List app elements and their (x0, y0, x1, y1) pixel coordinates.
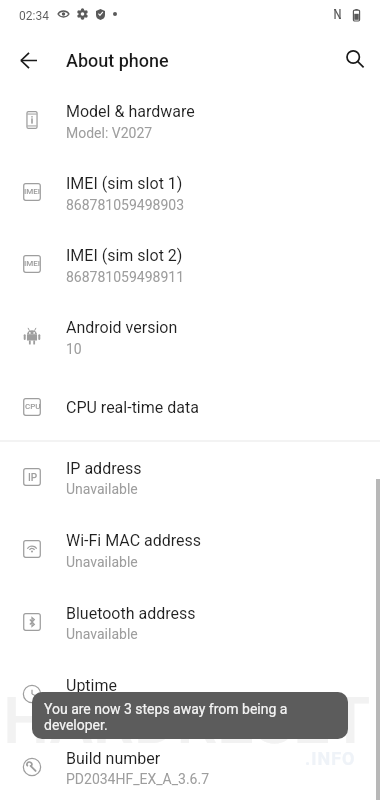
staticText: 868781059498903 (66, 197, 185, 213)
staticText: Model: V2027 (66, 125, 153, 141)
staticText: CPU real-time data (66, 398, 199, 417)
button[interactable] (0, 663, 380, 727)
button[interactable]: Search (333, 40, 373, 80)
button[interactable] (0, 591, 380, 655)
staticText: 868781059498911 (66, 269, 185, 285)
staticText: You are now 3 steps away from being a de… (44, 701, 334, 733)
staticText: IMEI (sim slot 2) (66, 246, 183, 265)
staticText: Bluetooth address (66, 604, 196, 623)
button[interactable] (0, 385, 380, 435)
staticText: Wi-Fi MAC address (66, 531, 202, 550)
staticText: IMEI (24, 259, 41, 268)
staticText: Unavailable (66, 481, 138, 497)
staticText: IMEI (24, 187, 41, 196)
staticText: IP address (66, 459, 142, 478)
staticText: About phone (66, 50, 169, 71)
button[interactable] (0, 161, 380, 225)
staticText: Unavailable (66, 554, 138, 570)
staticText: 10 (66, 341, 82, 357)
staticText: Android version (66, 318, 178, 337)
staticText: .INFO (305, 748, 356, 769)
staticText: 02:34 (19, 9, 49, 23)
button[interactable] (0, 446, 380, 510)
button[interactable] (0, 518, 380, 582)
staticText: IMEI (sim slot 1) (66, 174, 183, 193)
staticText: HARDRESET (3, 683, 371, 759)
staticText: Model & hardware (66, 102, 195, 121)
staticText: CPU (25, 402, 41, 411)
staticText: Unavailable (66, 626, 138, 642)
staticText: Uptime (66, 676, 117, 695)
button[interactable] (0, 305, 380, 369)
staticText: Build number (66, 749, 161, 768)
button[interactable]: Back (8, 40, 48, 80)
button[interactable] (0, 233, 380, 297)
staticText: IP (28, 472, 38, 484)
button[interactable] (0, 89, 380, 153)
staticText: PD2034HF_EX_A_3.6.7 (66, 771, 210, 787)
button[interactable] (0, 736, 380, 800)
